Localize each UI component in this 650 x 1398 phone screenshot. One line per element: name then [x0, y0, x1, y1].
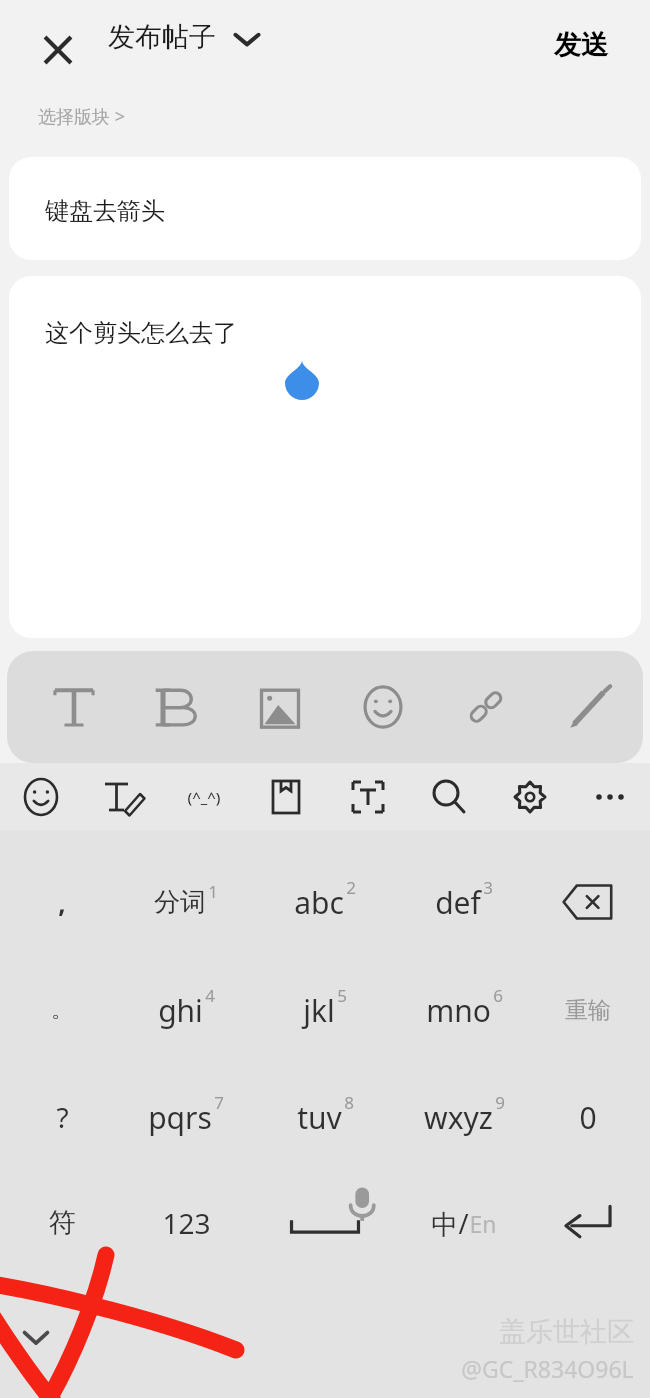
button[interactable]: ?: [0, 1071, 124, 1163]
button[interactable]: 分词: [124, 856, 248, 948]
button[interactable]: Text style: [46, 679, 102, 735]
button[interactable]: Emoji: [355, 679, 411, 735]
staticText: 4: [205, 984, 215, 1007]
button[interactable]: Insert image: [252, 679, 308, 735]
button[interactable]: Close: [34, 26, 82, 74]
staticText: 这个剪头怎么去了: [45, 318, 237, 348]
staticText: 。: [51, 996, 73, 1024]
staticText: tuv: [297, 1097, 342, 1138]
staticText: 0: [579, 1097, 597, 1138]
staticText: 发送: [554, 28, 608, 62]
staticText: 选择版块 >: [38, 104, 125, 129]
staticText: 重输: [565, 996, 611, 1025]
staticText: @GC_R834O96L: [461, 1353, 634, 1384]
button[interactable]: abc: [263, 856, 387, 948]
staticText: 3: [483, 876, 493, 899]
button[interactable]: Bold: [149, 679, 205, 735]
button[interactable]: More: [585, 772, 635, 822]
staticText: 盖乐世社区: [499, 1315, 634, 1349]
staticText: 符: [49, 1206, 76, 1240]
button[interactable]: Search: [424, 772, 474, 822]
button[interactable]: 中/: [402, 1177, 526, 1269]
button[interactable]: def: [402, 856, 526, 948]
staticText: 发布帖子: [108, 20, 216, 54]
button[interactable]: Kaomoji: [179, 772, 229, 822]
button[interactable]: Text scan: [343, 772, 393, 822]
staticText: pqrs: [148, 1097, 212, 1138]
staticText: 分词: [154, 886, 206, 919]
button[interactable]: 123: [124, 1177, 248, 1269]
staticText: jkl: [303, 990, 335, 1031]
staticText: 中/: [431, 1205, 469, 1242]
button[interactable]: jkl: [263, 964, 387, 1056]
staticText: 键盘去箭头: [45, 196, 165, 226]
button[interactable]: 发送: [550, 24, 612, 66]
button[interactable]: Clipboard: [261, 772, 311, 822]
button[interactable]: pqrs: [124, 1071, 248, 1163]
button[interactable]: Emoji: [16, 772, 66, 822]
button[interactable]: 选择版块 >: [38, 100, 125, 133]
staticText: 2: [346, 876, 356, 899]
button[interactable]: tuv: [263, 1071, 387, 1163]
button[interactable]: 这个剪头怎么去了: [9, 276, 641, 638]
staticText: 1: [208, 880, 218, 903]
staticText: 6: [493, 984, 503, 1007]
staticText: (^_^): [187, 787, 221, 807]
button[interactable]: ,: [0, 856, 124, 948]
button[interactable]: 键盘去箭头: [9, 157, 641, 260]
button[interactable]: Space: [263, 1177, 387, 1269]
button[interactable]: 。: [0, 964, 124, 1056]
staticText: 9: [495, 1091, 505, 1114]
staticText: En: [469, 1208, 497, 1239]
button[interactable]: Handwriting: [97, 772, 147, 822]
button[interactable]: Backspace: [526, 856, 650, 948]
button[interactable]: Enter: [526, 1177, 650, 1269]
staticText: 123: [162, 1204, 211, 1242]
staticText: 8: [344, 1091, 354, 1114]
staticText: 7: [214, 1091, 224, 1114]
button[interactable]: ghi: [124, 964, 248, 1056]
staticText: wxyz: [424, 1097, 493, 1138]
button[interactable]: Hide keyboard: [14, 1315, 58, 1359]
button[interactable]: 重输: [526, 964, 650, 1056]
button[interactable]: mno: [402, 964, 526, 1056]
staticText: ,: [58, 885, 66, 920]
button[interactable]: Settings: [505, 772, 555, 822]
button[interactable]: wxyz: [402, 1071, 526, 1163]
staticText: def: [435, 882, 481, 923]
staticText: ghi: [158, 990, 203, 1031]
button[interactable]: Insert link: [458, 679, 514, 735]
staticText: 5: [337, 984, 347, 1007]
staticText: ?: [56, 1098, 69, 1136]
button[interactable]: 0: [526, 1071, 650, 1163]
button[interactable]: 发布帖子: [108, 20, 264, 54]
button[interactable]: 符: [0, 1177, 124, 1269]
staticText: abc: [294, 882, 344, 923]
button[interactable]: Draw: [562, 679, 618, 735]
staticText: mno: [426, 990, 491, 1031]
